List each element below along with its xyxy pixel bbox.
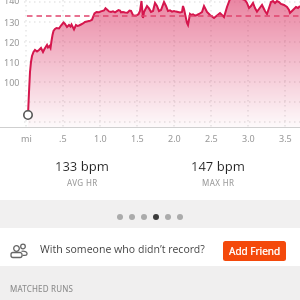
- staticText: mi: [21, 132, 32, 144]
- staticText: Add Friend: [229, 244, 281, 258]
- staticText: .5: [59, 132, 67, 144]
- staticText: 1.0: [94, 132, 107, 144]
- staticText: 140: [4, 0, 20, 6]
- staticText: 3.0: [242, 132, 255, 144]
- staticText: With someone who didn’t record?: [40, 242, 205, 256]
- staticText: 147 bpm: [191, 157, 245, 175]
- staticText: 130: [4, 16, 20, 28]
- staticText: 2.0: [168, 132, 181, 144]
- staticText: 1.5: [131, 132, 144, 144]
- staticText: AVG HR: [67, 177, 98, 188]
- staticText: 100: [4, 76, 20, 88]
- staticText: MAX HR: [202, 177, 235, 188]
- staticText: 110: [4, 56, 20, 68]
- staticText: 133 bpm: [55, 157, 109, 175]
- staticText: MATCHED RUNS: [10, 283, 74, 294]
- staticText: 3.5: [279, 132, 292, 144]
- staticText: 2.5: [205, 132, 218, 144]
- button[interactable]: With someone who didn’t record?: [0, 231, 300, 266]
- staticText: 120: [4, 36, 20, 48]
- button[interactable]: Add Friend: [223, 241, 286, 261]
